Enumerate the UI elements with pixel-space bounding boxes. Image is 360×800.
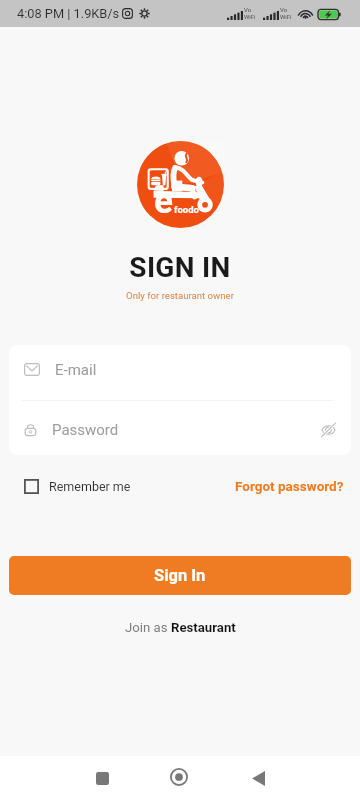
staticText: Vo [280, 6, 288, 13]
staticText: 4:08 PM | 1.9KB/s [17, 6, 120, 21]
button[interactable]: Restaurant [171, 620, 236, 635]
staticText: foodo [174, 204, 199, 215]
button[interactable]: Password [9, 403, 351, 455]
staticText: Join as [125, 620, 171, 635]
button[interactable]: Home [155, 756, 203, 800]
staticText: Password [52, 421, 119, 439]
staticText: e [154, 181, 173, 222]
button[interactable]: Recents [78, 756, 126, 800]
button[interactable]: Remember me [24, 479, 131, 494]
button[interactable]: E-mail [9, 345, 351, 397]
staticText: Sign In [154, 566, 206, 585]
staticText: E-mail [55, 361, 97, 379]
button[interactable]: Back [234, 756, 282, 800]
staticText: Vo [244, 6, 252, 13]
staticText: SIGN IN [0, 251, 360, 284]
button[interactable]: Sign In [9, 556, 351, 595]
staticText: WiFi [280, 13, 292, 20]
staticText: WiFi [244, 13, 256, 20]
staticText: Remember me [49, 479, 131, 494]
button[interactable]: Show password [317, 419, 339, 441]
staticText: Only for restaurant owner [0, 290, 360, 301]
button[interactable]: Forgot password? [235, 478, 344, 494]
